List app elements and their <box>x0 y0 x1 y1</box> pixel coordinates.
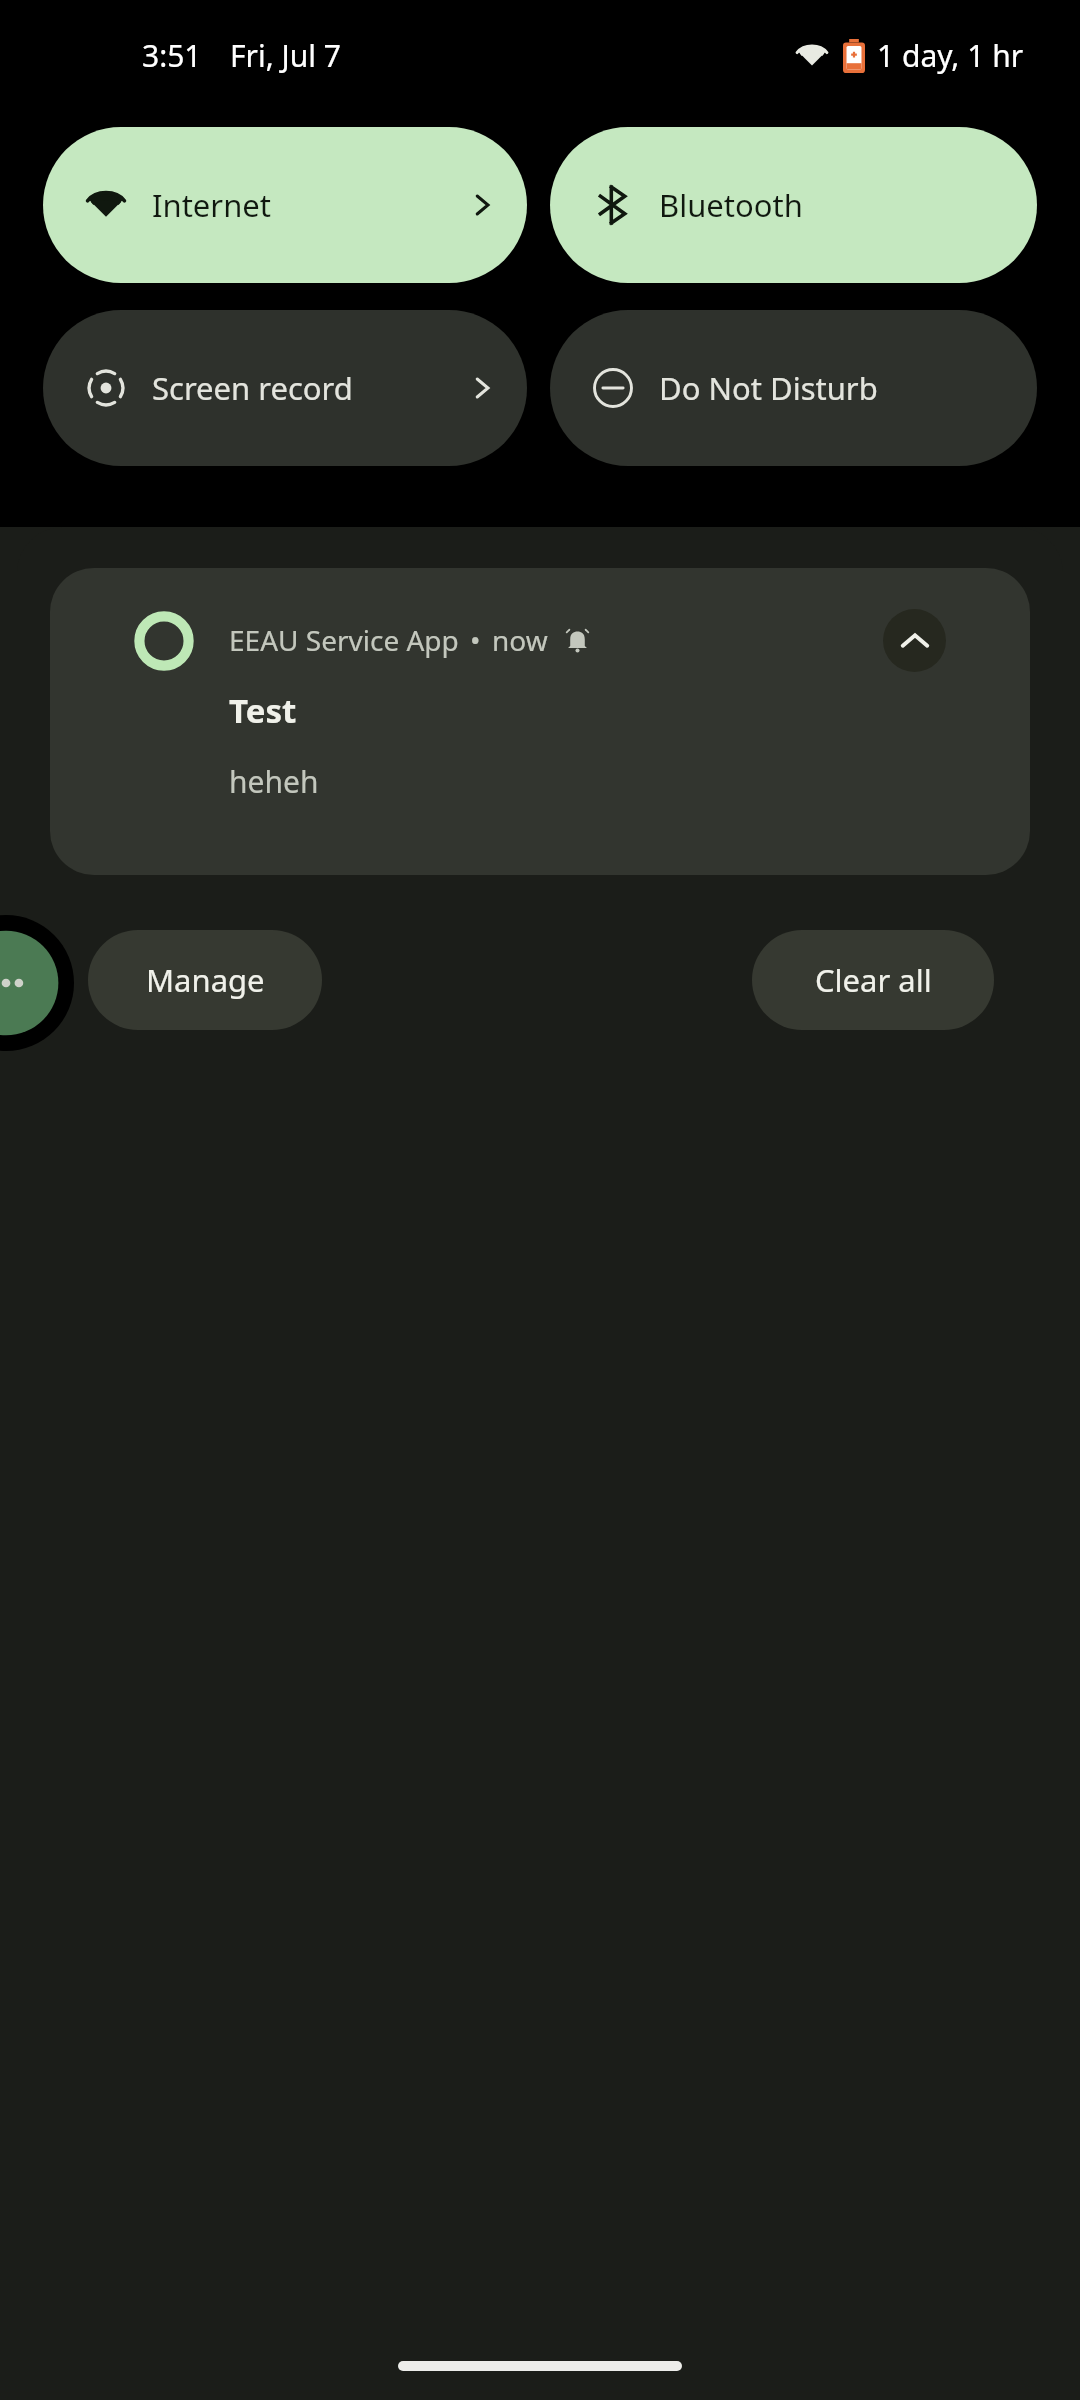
button[interactable]: Bubble <box>0 915 74 1051</box>
button[interactable]: Clear all <box>752 930 994 1030</box>
button[interactable]: Bluetooth <box>550 127 1037 283</box>
button[interactable]: Internet <box>43 127 527 283</box>
staticText: 1 day, 1 hr <box>877 35 1024 76</box>
button[interactable]: EEAU Service App <box>50 568 1030 875</box>
staticText: now <box>492 621 548 659</box>
staticText: Bluetooth <box>659 184 803 226</box>
staticText: Manage <box>146 959 265 1001</box>
staticText: Clear all <box>815 959 932 1001</box>
button[interactable]: Collapse notification <box>883 609 946 672</box>
staticText: Test <box>229 688 297 733</box>
staticText: heheh <box>229 761 319 802</box>
staticText: Screen record <box>152 367 353 409</box>
button[interactable]: Do Not Disturb <box>550 310 1037 466</box>
staticText: Do Not Disturb <box>659 367 878 409</box>
staticText: 3:51 <box>142 35 202 76</box>
staticText: EEAU Service App <box>229 621 459 659</box>
button[interactable]: Screen record <box>43 310 527 466</box>
staticText: Internet <box>152 184 271 226</box>
staticText: • <box>470 621 481 659</box>
button[interactable]: Manage <box>88 930 322 1030</box>
staticText: Fri, Jul 7 <box>230 35 341 76</box>
